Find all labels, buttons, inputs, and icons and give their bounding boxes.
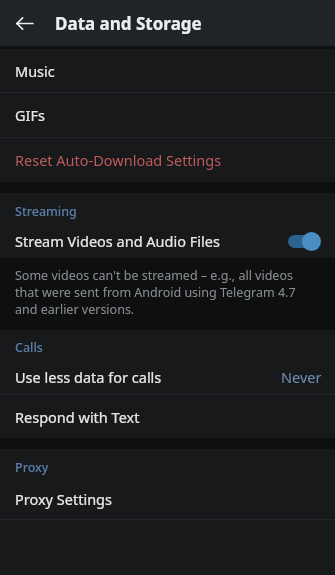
- staticText: Calls: [15, 339, 43, 356]
- staticText: Never: [281, 367, 322, 387]
- staticText: Some videos can't be streamed – e.g., al…: [15, 267, 313, 318]
- staticText: Music: [15, 61, 55, 81]
- staticText: Data and Storage: [55, 12, 202, 35]
- staticText: Respond with Text: [15, 407, 140, 427]
- staticText: Proxy: [15, 459, 49, 476]
- staticText: Stream Videos and Audio Files: [15, 231, 220, 251]
- button[interactable]: Proxy Settings: [0, 479, 335, 519]
- staticText: Streaming: [15, 203, 77, 220]
- staticText: Proxy Settings: [15, 489, 112, 509]
- button[interactable]: Stream Videos and Audio Files: [0, 223, 335, 258]
- button[interactable]: Use less data for calls: [0, 359, 335, 394]
- button[interactable]: Music: [0, 49, 335, 92]
- staticText: GIFs: [15, 105, 45, 125]
- button[interactable]: Back: [5, 4, 43, 42]
- staticText: Reset Auto-Download Settings: [15, 150, 222, 170]
- button[interactable]: GIFs: [0, 93, 335, 137]
- staticText: Use less data for calls: [15, 367, 162, 387]
- button[interactable]: Respond with Text: [0, 395, 335, 438]
- button[interactable]: Reset Auto-Download Settings: [0, 138, 335, 182]
